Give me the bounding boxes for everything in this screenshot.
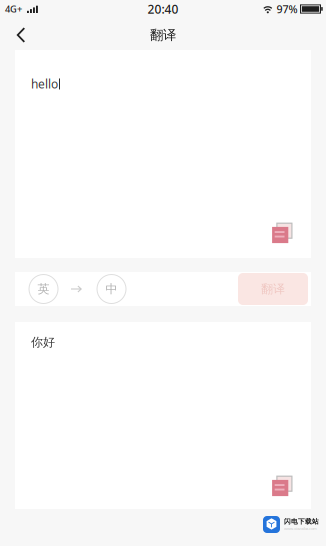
staticText: 翻译 <box>261 282 285 296</box>
button[interactable]: Copy translation <box>265 469 299 503</box>
button[interactable]: Target language: Chinese <box>97 274 126 303</box>
button[interactable]: 翻译 <box>238 273 308 305</box>
staticText: 你好 <box>31 335 55 350</box>
staticText: 英 <box>37 282 49 296</box>
staticText: www.xiazaiba.com <box>284 526 317 531</box>
staticText: 97% <box>276 2 297 16</box>
staticText: 闪电下载站 <box>284 517 319 526</box>
button[interactable]: Source language: English <box>29 274 58 303</box>
staticText: 4G+ <box>5 3 22 15</box>
staticText: hello <box>31 76 58 92</box>
button[interactable]: Copy source text <box>265 216 299 250</box>
staticText: 20:40 <box>147 1 178 17</box>
staticText: 中 <box>105 282 117 296</box>
button[interactable]: Back <box>0 20 42 50</box>
staticText: 翻译 <box>150 27 176 43</box>
